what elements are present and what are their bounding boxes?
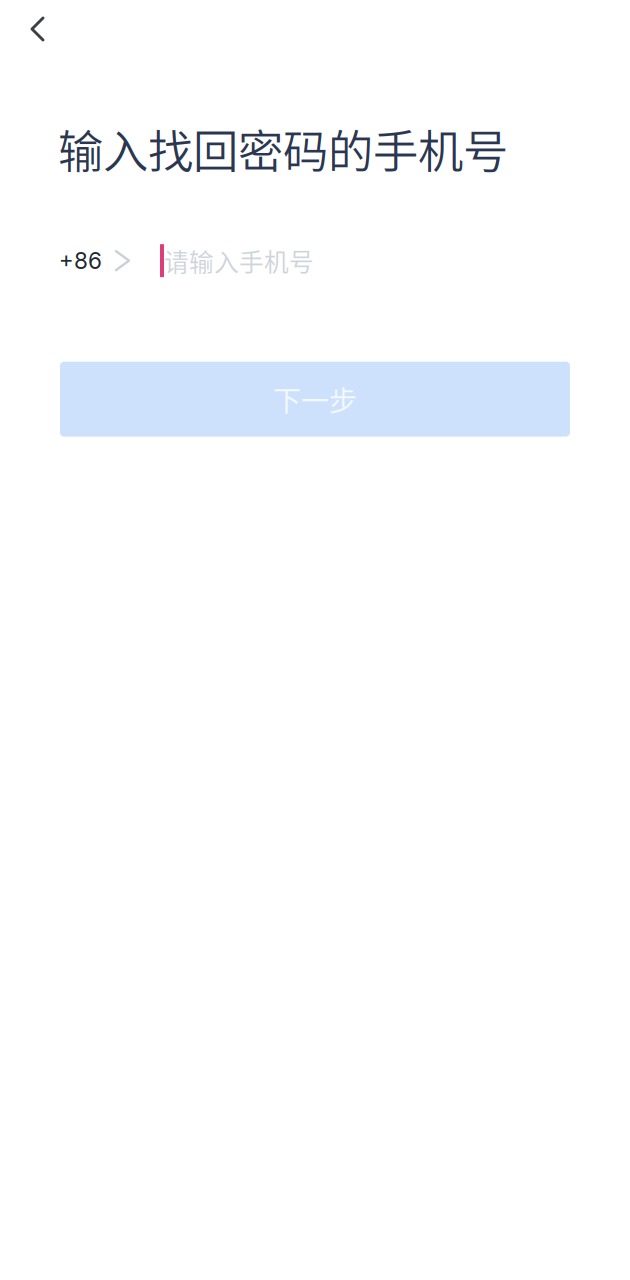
staticText: 下一步 bbox=[273, 379, 357, 419]
staticText: 输入找回密码的手机号 bbox=[58, 116, 508, 182]
button[interactable]: 国家区号 +86 bbox=[0, 247, 160, 274]
staticText: 请输入手机号 bbox=[164, 243, 314, 278]
button[interactable]: 下一步 bbox=[60, 362, 570, 437]
button[interactable]: Back bbox=[0, 0, 66, 60]
button[interactable]: 请输入手机号 bbox=[160, 241, 630, 281]
staticText: +86 bbox=[59, 247, 102, 274]
